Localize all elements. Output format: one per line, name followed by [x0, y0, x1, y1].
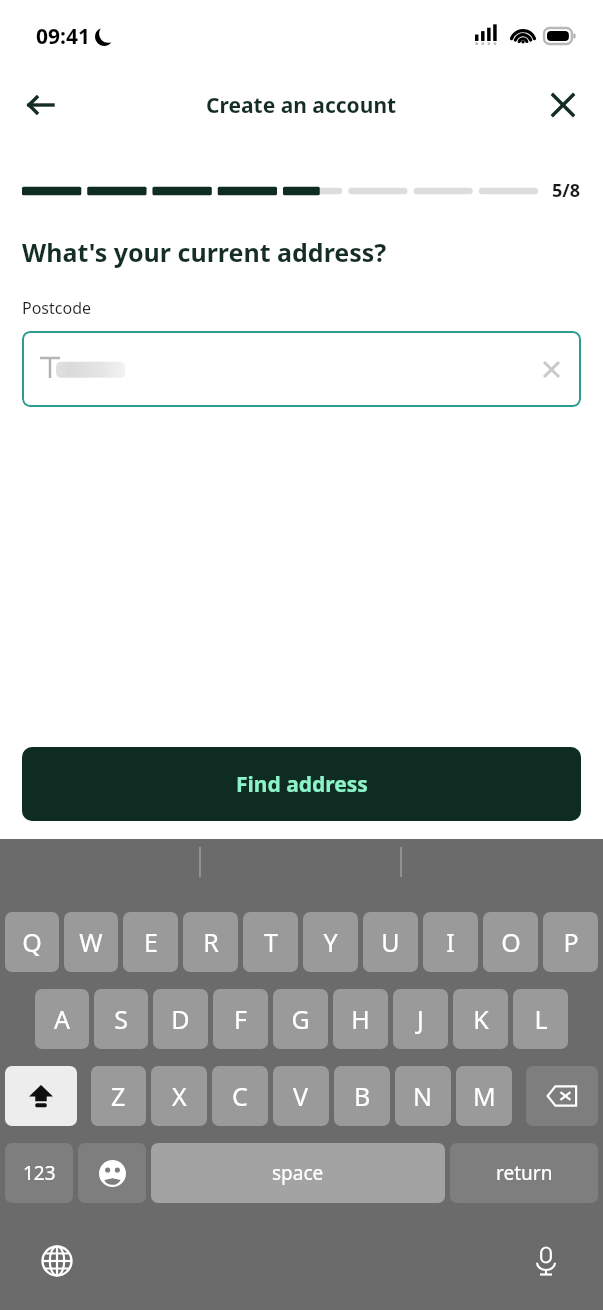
staticText: M: [473, 1079, 496, 1113]
staticText: Find address: [236, 770, 368, 799]
staticText: 123: [23, 1160, 56, 1186]
button[interactable]: T: [243, 912, 298, 972]
button[interactable]: Back: [14, 79, 66, 131]
staticText: Create an account: [206, 91, 397, 120]
button[interactable]: E: [123, 912, 178, 972]
button[interactable]: L: [513, 989, 568, 1049]
button[interactable]: U: [363, 912, 418, 972]
staticText: D: [171, 1002, 190, 1036]
button[interactable]: Backspace: [526, 1066, 598, 1126]
button[interactable]: Find address: [22, 747, 581, 821]
staticText: return: [496, 1160, 553, 1186]
staticText: C: [232, 1079, 248, 1113]
button[interactable]: A: [35, 989, 89, 1049]
button[interactable]: Q: [5, 912, 59, 972]
button[interactable]: Voice input: [525, 1240, 567, 1282]
staticText: L: [534, 1002, 548, 1036]
staticText: F: [234, 1002, 247, 1036]
button[interactable]: K: [453, 989, 508, 1049]
staticText: space: [272, 1160, 324, 1186]
button[interactable]: D: [153, 989, 208, 1049]
staticText: A: [54, 1002, 70, 1036]
button[interactable]: G: [273, 989, 328, 1049]
button[interactable]: R: [183, 912, 238, 972]
staticText: V: [293, 1079, 309, 1113]
button[interactable]: W: [64, 912, 118, 972]
staticText: Y: [323, 925, 338, 959]
button[interactable]: Clear: [22, 331, 581, 407]
button[interactable]: Y: [303, 912, 358, 972]
button[interactable]: Z: [91, 1066, 146, 1126]
staticText: T: [264, 925, 278, 959]
button[interactable]: M: [456, 1066, 512, 1126]
button[interactable]: I: [423, 912, 478, 972]
button[interactable]: V: [273, 1066, 329, 1126]
staticText: Postcode: [22, 297, 92, 319]
button[interactable]: Clear: [531, 349, 571, 389]
staticText: Q: [22, 925, 42, 959]
staticText: I: [446, 925, 455, 959]
button[interactable]: B: [334, 1066, 390, 1126]
staticText: What's your current address?: [22, 235, 387, 269]
button[interactable]: return: [450, 1143, 598, 1203]
button[interactable]: F: [213, 989, 268, 1049]
staticText: W: [79, 925, 103, 959]
button[interactable]: P: [543, 912, 598, 972]
staticText: R: [203, 925, 219, 959]
button[interactable]: X: [151, 1066, 207, 1126]
button[interactable]: Change keyboard language: [36, 1240, 78, 1282]
staticText: 5/8: [552, 178, 581, 203]
staticText: N: [413, 1079, 433, 1113]
staticText: E: [144, 925, 158, 959]
staticText: 09:41: [36, 22, 90, 51]
button[interactable]: 123: [5, 1143, 73, 1203]
button[interactable]: J: [393, 989, 448, 1049]
staticText: G: [291, 1002, 310, 1036]
button[interactable]: S: [94, 989, 148, 1049]
button[interactable]: space: [151, 1143, 445, 1203]
button[interactable]: H: [333, 989, 388, 1049]
staticText: P: [563, 925, 579, 959]
staticText: U: [381, 925, 400, 959]
button[interactable]: Emoji: [78, 1143, 146, 1203]
staticText: H: [351, 1002, 370, 1036]
button[interactable]: Shift: [5, 1066, 77, 1126]
button[interactable]: Close: [537, 79, 589, 131]
staticText: Z: [111, 1079, 126, 1113]
staticText: B: [354, 1079, 371, 1113]
staticText: K: [473, 1002, 489, 1036]
button[interactable]: O: [483, 912, 538, 972]
staticText: O: [501, 925, 521, 959]
staticText: X: [172, 1079, 187, 1113]
staticText: J: [417, 1002, 424, 1036]
button[interactable]: N: [395, 1066, 451, 1126]
staticText: S: [114, 1002, 128, 1036]
button[interactable]: C: [212, 1066, 268, 1126]
